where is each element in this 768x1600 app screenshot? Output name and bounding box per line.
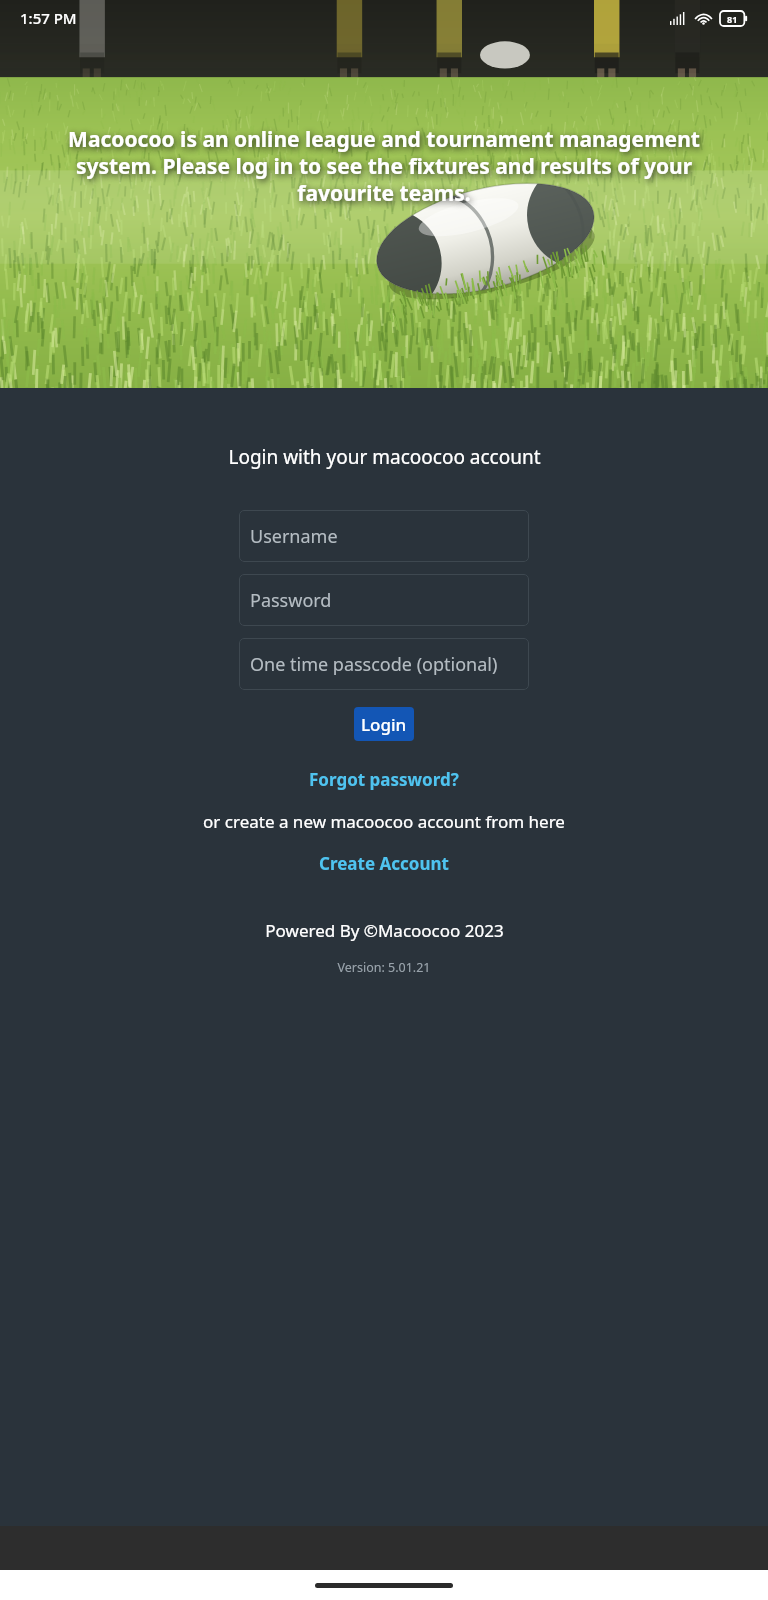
other: Battery 81 percent bbox=[720, 11, 748, 26]
staticText: Password bbox=[250, 588, 332, 613]
staticText: or create a new macoocoo account from he… bbox=[203, 810, 565, 833]
staticText: Login with your macoocoo account bbox=[228, 444, 541, 470]
button[interactable]: Create Account bbox=[309, 847, 459, 880]
button[interactable]: Login bbox=[354, 707, 414, 741]
staticText: One time passcode (optional) bbox=[250, 652, 498, 677]
staticText: Version: 5.01.21 bbox=[337, 959, 431, 976]
button[interactable]: Username bbox=[239, 510, 529, 562]
staticText: Login bbox=[361, 713, 407, 736]
staticText: Create Account bbox=[319, 852, 449, 875]
other: Mobile signal bbox=[670, 12, 687, 25]
staticText: 81 bbox=[727, 13, 738, 25]
other: Wi-Fi bbox=[695, 12, 712, 25]
staticText: 1:57 PM bbox=[20, 8, 77, 28]
staticText: Forgot password? bbox=[309, 768, 459, 791]
button[interactable]: Password bbox=[239, 574, 529, 626]
button[interactable]: Forgot password? bbox=[299, 763, 469, 796]
staticText: Username bbox=[250, 524, 338, 549]
staticText: Macoocoo is an online league and tournam… bbox=[47, 125, 721, 207]
staticText: Powered By ©Macoocoo 2023 bbox=[265, 919, 504, 942]
button[interactable]: One time passcode (optional) bbox=[239, 638, 529, 690]
